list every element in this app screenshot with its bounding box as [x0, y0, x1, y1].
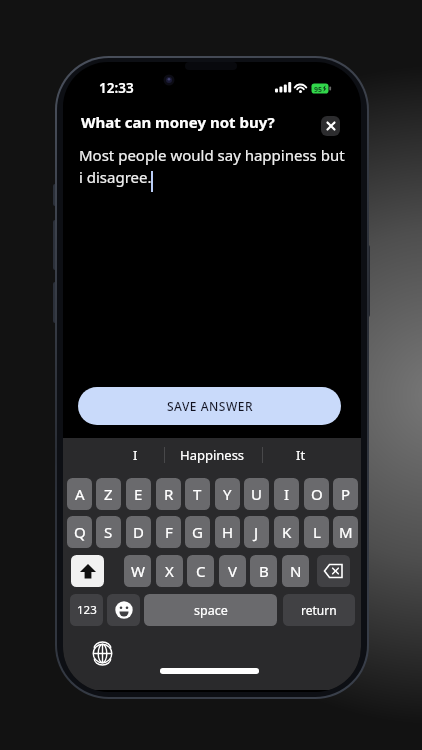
button[interactable]: X	[156, 555, 183, 587]
staticText: C	[196, 561, 206, 581]
button[interactable]: N	[282, 555, 309, 587]
button[interactable]: F	[156, 516, 181, 548]
button[interactable]: C	[187, 555, 214, 587]
staticText: D	[133, 522, 144, 542]
button[interactable]	[317, 555, 350, 587]
staticText: L	[313, 522, 321, 542]
staticText: W	[131, 561, 145, 581]
button[interactable]	[107, 594, 140, 626]
staticText: M	[339, 522, 353, 542]
staticText: What can money not buy?	[81, 112, 275, 132]
button[interactable]: G	[185, 516, 210, 548]
button[interactable]: T	[185, 478, 210, 510]
button[interactable]: S	[96, 516, 121, 548]
button[interactable]: H	[215, 516, 240, 548]
staticText: K	[282, 522, 292, 542]
button[interactable]	[71, 555, 104, 587]
staticText: 95	[314, 85, 323, 95]
button[interactable]: I	[274, 478, 299, 510]
button[interactable]: Z	[96, 478, 121, 510]
staticText: i disagree.	[79, 167, 152, 187]
staticText: Z	[104, 484, 113, 504]
staticText: B	[259, 561, 269, 581]
staticText: Happiness	[180, 446, 245, 464]
button[interactable]: It	[262, 438, 360, 471]
button[interactable]: R	[156, 478, 181, 510]
button[interactable]: B	[250, 555, 277, 587]
staticText: 123	[77, 602, 97, 618]
button[interactable]: V	[219, 555, 246, 587]
button[interactable]: Happiness	[163, 438, 261, 471]
staticText: space	[194, 602, 228, 619]
staticText: V	[228, 561, 238, 581]
staticText: O	[311, 484, 323, 504]
staticText: It	[296, 446, 306, 464]
button[interactable]: D	[126, 516, 151, 548]
button[interactable]: A	[67, 478, 92, 510]
staticText: I	[284, 484, 290, 504]
staticText: E	[134, 484, 143, 504]
button[interactable]: O	[304, 478, 329, 510]
staticText: R	[164, 484, 174, 504]
staticText: A	[75, 484, 85, 504]
staticText: Y	[223, 484, 232, 504]
button[interactable]: return	[283, 594, 355, 626]
staticText: Most people would say happiness but	[79, 145, 345, 165]
button[interactable]: L	[304, 516, 329, 548]
button[interactable]: M	[333, 516, 358, 548]
button[interactable]: W	[124, 555, 151, 587]
staticText: N	[290, 561, 302, 581]
button[interactable]: E	[126, 478, 151, 510]
button[interactable]: Q	[67, 516, 92, 548]
staticText: I	[133, 446, 138, 464]
staticText: X	[165, 561, 174, 581]
button[interactable]: I	[63, 438, 162, 471]
button[interactable]: Y	[215, 478, 240, 510]
button[interactable]: U	[244, 478, 269, 510]
button[interactable]: K	[274, 516, 299, 548]
staticText: U	[251, 484, 262, 504]
button[interactable]: 123	[70, 594, 103, 626]
button[interactable]: SAVE ANSWER	[78, 387, 341, 425]
button[interactable]: space	[144, 594, 277, 626]
staticText: H	[222, 522, 234, 542]
staticText: 12:33	[99, 79, 134, 97]
button[interactable]	[321, 116, 340, 136]
staticText: S	[104, 522, 113, 542]
staticText: P	[341, 484, 351, 504]
button[interactable]: P	[333, 478, 358, 510]
staticText: SAVE ANSWER	[167, 398, 253, 414]
staticText: Q	[74, 522, 86, 542]
staticText: F	[165, 522, 173, 542]
staticText: return	[301, 602, 337, 618]
staticText: G	[192, 522, 203, 542]
staticText: J	[254, 522, 259, 542]
staticText: T	[193, 484, 202, 504]
button[interactable]: J	[244, 516, 269, 548]
